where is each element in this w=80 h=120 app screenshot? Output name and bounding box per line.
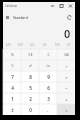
button[interactable]: ÷ <box>57 60 75 71</box>
button[interactable]: ± <box>3 104 21 115</box>
staticText: C <box>47 52 50 57</box>
staticText: % <box>11 52 14 57</box>
button[interactable]: Minimize <box>48 2 57 10</box>
staticText: . <box>47 107 49 113</box>
staticText: ÷ <box>65 63 68 69</box>
button[interactable]: ⅟ₓ <box>3 60 21 71</box>
staticText: 5 <box>29 85 32 91</box>
button[interactable]: 5 <box>21 82 39 93</box>
button[interactable]: = <box>57 104 75 115</box>
button[interactable]: CE <box>21 49 39 60</box>
button[interactable]: 6 <box>39 82 57 93</box>
staticText: MR <box>18 42 24 47</box>
staticText: ⅟ₓ <box>11 63 14 68</box>
button[interactable]: 2 <box>21 93 39 104</box>
button[interactable]: 4 <box>3 82 21 93</box>
staticText: Calculator <box>5 4 18 8</box>
button[interactable]: × <box>57 71 75 82</box>
staticText: × <box>65 74 68 80</box>
button[interactable]: x² <box>21 60 39 71</box>
button[interactable]: . <box>39 104 57 115</box>
staticText: 7 <box>11 74 14 80</box>
button[interactable]: MS <box>51 41 63 48</box>
button[interactable]: 0 <box>21 104 39 115</box>
staticText: + <box>65 96 68 102</box>
staticText: ⌫ <box>64 53 69 57</box>
staticText: 1 <box>11 96 14 102</box>
staticText: = <box>65 107 68 113</box>
staticText: 6 <box>47 85 50 91</box>
staticText: MC <box>6 42 12 47</box>
button[interactable]: ⌫ <box>57 49 75 60</box>
staticText: M˅ <box>67 42 72 47</box>
staticText: M+ <box>30 42 36 47</box>
button[interactable]: √x <box>39 60 57 71</box>
staticText: 0 <box>64 26 71 40</box>
button[interactable]: Close <box>66 2 75 10</box>
staticText: x² <box>29 63 32 68</box>
staticText: 8 <box>29 74 32 80</box>
staticText: ± <box>11 107 14 113</box>
button[interactable]: MC <box>3 41 15 48</box>
staticText: − <box>65 85 68 91</box>
staticText: Standard <box>13 15 28 20</box>
button[interactable]: % <box>3 49 21 60</box>
staticText: M- <box>43 42 48 47</box>
button[interactable]: 1 <box>3 93 21 104</box>
button[interactable]: Standard <box>3 11 28 23</box>
button[interactable]: History <box>65 13 74 22</box>
staticText: 0 <box>29 107 32 113</box>
button[interactable]: MR <box>15 41 27 48</box>
staticText: 3 <box>47 96 50 102</box>
button[interactable]: M- <box>39 41 51 48</box>
button[interactable]: 8 <box>21 71 39 82</box>
staticText: MS <box>55 42 60 47</box>
button[interactable]: 7 <box>3 71 21 82</box>
staticText: 2 <box>29 96 32 102</box>
button[interactable]: + <box>57 93 75 104</box>
staticText: √x <box>46 63 50 68</box>
button[interactable]: C <box>39 49 57 60</box>
button[interactable]: Maximize <box>57 2 66 10</box>
button[interactable]: 9 <box>39 71 57 82</box>
button[interactable]: 3 <box>39 93 57 104</box>
button[interactable]: M˅ <box>63 41 75 48</box>
button[interactable]: M+ <box>27 41 39 48</box>
staticText: CE <box>28 52 33 57</box>
button[interactable]: − <box>57 82 75 93</box>
staticText: 9 <box>47 74 50 80</box>
staticText: 4 <box>11 85 14 91</box>
